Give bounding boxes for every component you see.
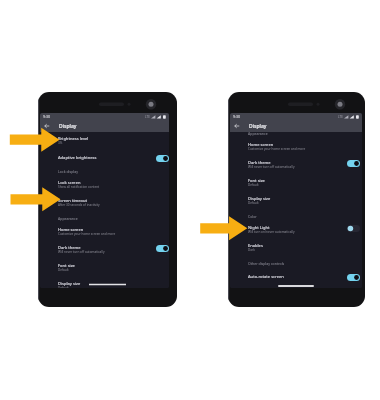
staticText: Night Light — [248, 225, 270, 230]
button[interactable]: Back — [230, 120, 244, 132]
staticText: 9:30 — [43, 114, 51, 119]
staticText: Will turn on/never automatically — [248, 230, 295, 234]
button[interactable]: Brightness level — [40, 136, 169, 148]
button[interactable]: Dark theme — [230, 160, 362, 172]
button[interactable]: Adaptive brightness — [40, 155, 169, 167]
staticText: Lock display — [58, 169, 78, 174]
staticText: Font size — [248, 178, 265, 183]
button[interactable]: Dark theme — [40, 245, 169, 257]
staticText: LTE — [338, 115, 343, 119]
staticText: Appearance — [58, 216, 78, 221]
staticText: Customize your home screen and more — [58, 232, 116, 236]
staticText: Brightness level — [58, 136, 89, 141]
staticText: Font size — [58, 263, 75, 268]
button[interactable]: Enables — [230, 243, 362, 255]
button[interactable]: Toggle switch — [347, 274, 360, 281]
button[interactable]: Back — [40, 120, 54, 132]
staticText: Will never turn off automatically — [58, 250, 105, 254]
staticText: Lock screen — [58, 180, 81, 185]
staticText: 3% — [58, 141, 63, 145]
button[interactable]: Auto-rotate screen — [230, 274, 362, 286]
staticText: Dark — [248, 248, 255, 252]
staticText: Display — [249, 123, 267, 130]
staticText: Display size — [248, 196, 271, 201]
staticText: Dark theme — [58, 245, 81, 250]
button[interactable]: Font size — [230, 178, 362, 190]
staticText: Display — [59, 123, 77, 130]
staticText: Default — [58, 286, 69, 288]
staticText: Appearance — [248, 132, 268, 136]
staticText: Adaptive brightness — [58, 155, 97, 160]
button[interactable]: Display size — [40, 281, 169, 288]
staticText: Color — [248, 214, 257, 219]
staticText: Default — [248, 183, 259, 187]
button[interactable]: Night Light — [230, 225, 362, 237]
staticText: 9:30 — [233, 114, 241, 119]
button[interactable]: Toggle switch — [156, 155, 169, 162]
staticText: Screen timeout — [58, 198, 88, 203]
button[interactable]: Home screen — [40, 227, 169, 239]
staticText: Home screen — [58, 227, 84, 232]
button[interactable]: Display size — [230, 196, 362, 208]
button[interactable]: Lock screen — [40, 180, 169, 192]
button[interactable]: Toggle switch — [347, 225, 360, 232]
staticText: Home screen — [248, 142, 274, 147]
staticText: Default — [248, 201, 259, 205]
staticText: Display size — [58, 281, 81, 286]
button[interactable]: Toggle switch — [156, 245, 169, 252]
staticText: Dark theme — [248, 160, 271, 165]
button[interactable]: Font size — [40, 263, 169, 275]
staticText: LTE — [145, 115, 150, 119]
staticText: Customize your home screen and more — [248, 147, 306, 151]
button[interactable]: Screen timeout — [40, 198, 169, 210]
staticText: Show all notification content — [58, 185, 100, 189]
staticText: After 30 seconds of inactivity — [58, 203, 100, 207]
staticText: Default — [58, 268, 69, 272]
staticText: Auto-rotate screen — [248, 274, 284, 279]
staticText: Other display controls — [248, 261, 285, 266]
staticText: Will never turn off automatically — [248, 165, 295, 169]
staticText: Enables — [248, 243, 263, 248]
button[interactable]: Toggle switch — [347, 160, 360, 167]
button[interactable]: Home screen — [230, 142, 362, 154]
